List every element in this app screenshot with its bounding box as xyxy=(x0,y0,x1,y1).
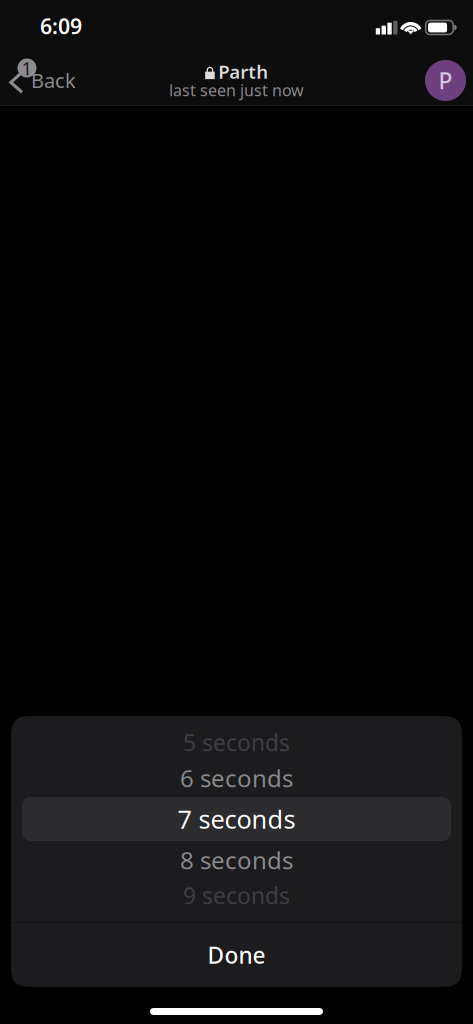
staticText: 6:09 xyxy=(40,12,82,40)
staticText: P xyxy=(438,65,452,95)
staticText: 5 seconds xyxy=(183,727,290,757)
button[interactable]: Back xyxy=(0,50,86,105)
staticText: 6 seconds xyxy=(180,762,293,794)
button[interactable]: Profile and call options xyxy=(425,57,473,98)
staticText: 9 seconds xyxy=(183,880,290,910)
button[interactable]: Done xyxy=(11,923,462,987)
staticText: 7 seconds xyxy=(177,802,295,836)
staticText: last seen just now xyxy=(169,79,304,101)
staticText: 1 xyxy=(21,56,32,80)
staticText: 8 seconds xyxy=(180,844,293,876)
staticText: Parth xyxy=(218,59,268,84)
staticText: Back xyxy=(31,67,76,94)
staticText: Done xyxy=(207,940,265,970)
